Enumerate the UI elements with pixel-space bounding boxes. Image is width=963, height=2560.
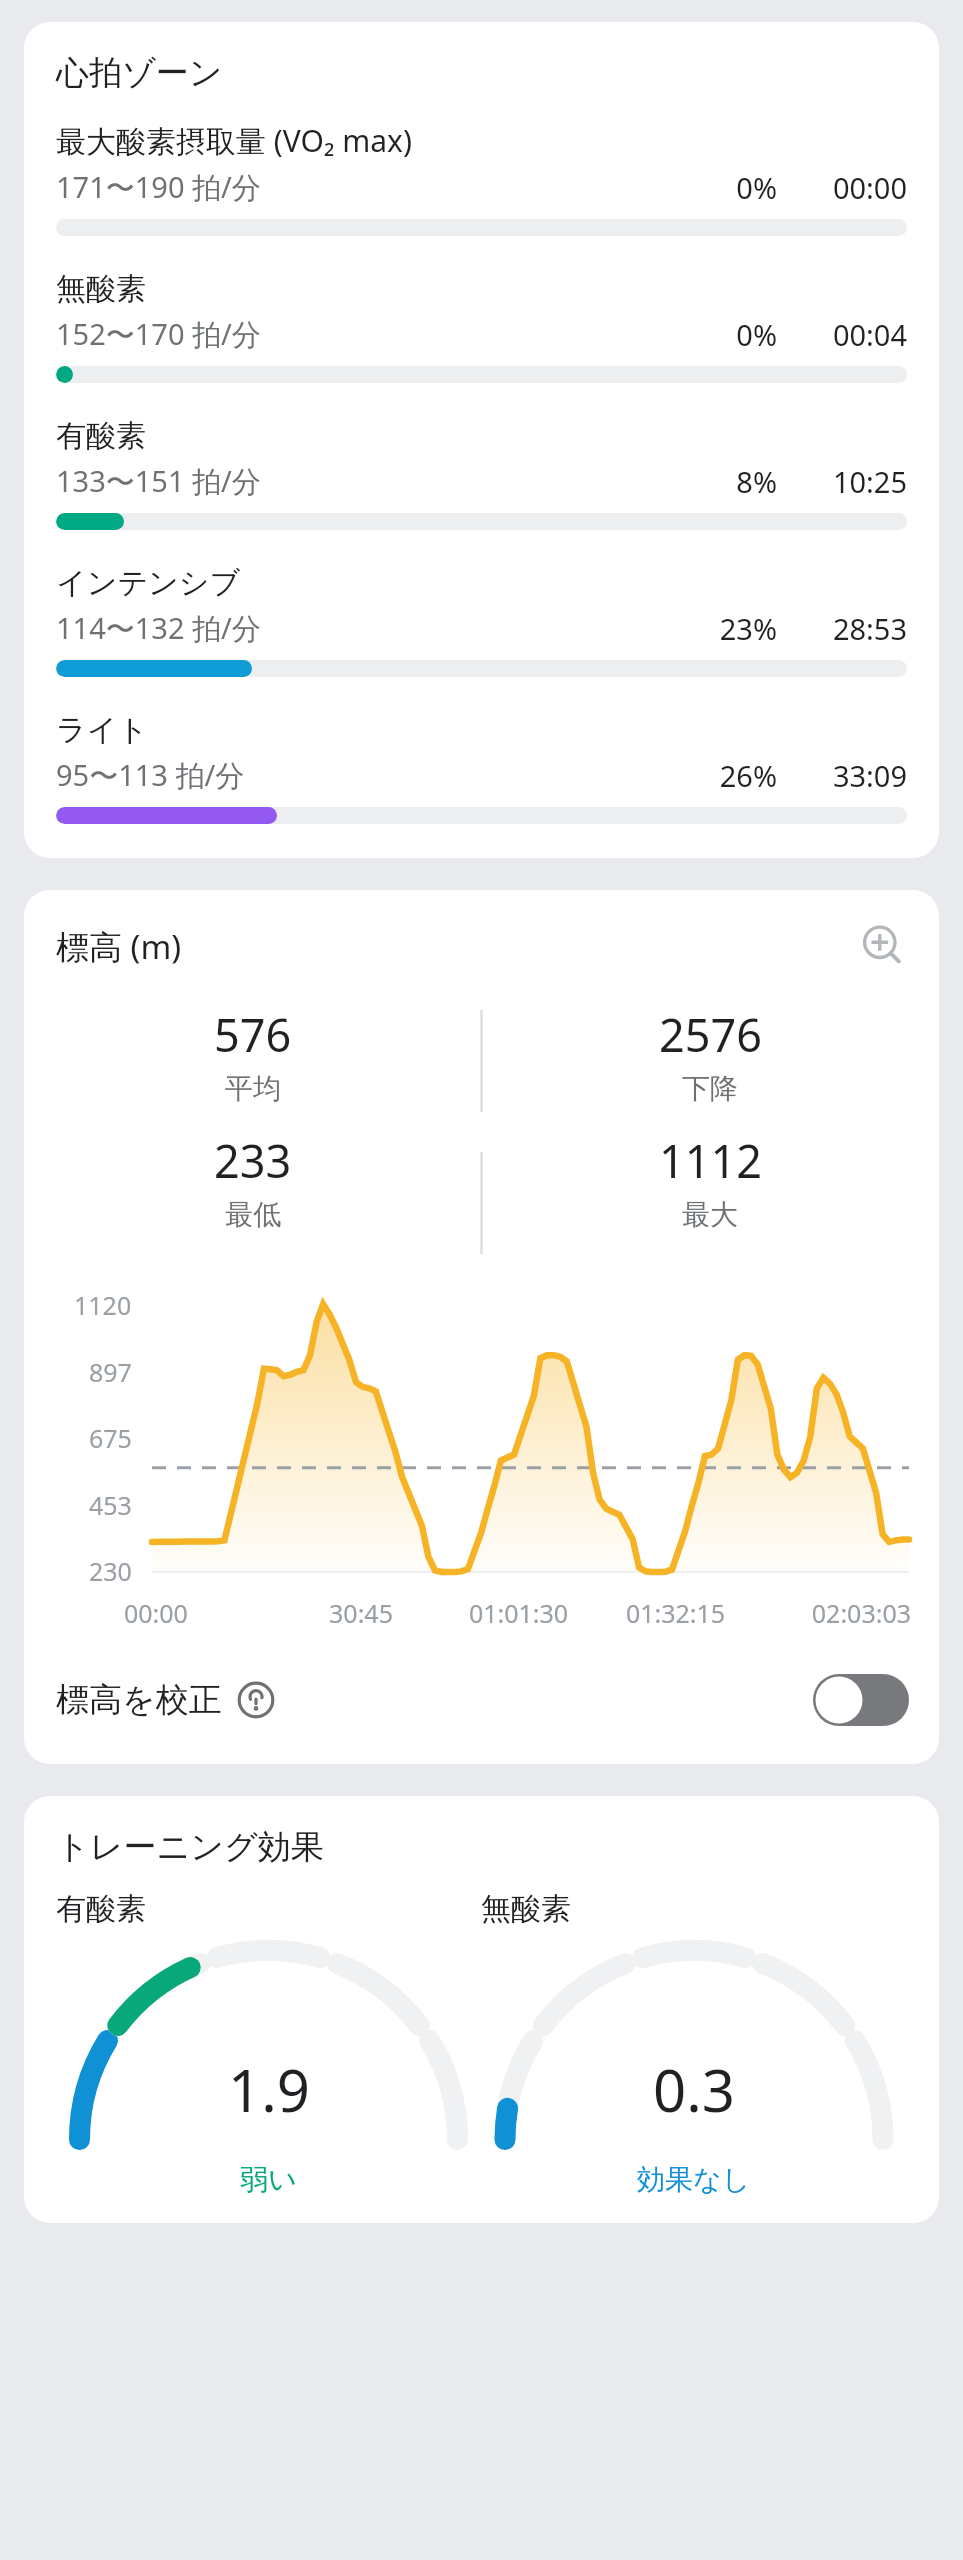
staticText: ライト	[56, 711, 149, 749]
staticText: 1112	[659, 1130, 762, 1191]
staticText: 00:00	[124, 1596, 282, 1630]
staticText: 0%	[687, 168, 777, 207]
staticText: 0%	[687, 315, 777, 354]
staticText: 02:03:03	[754, 1596, 911, 1630]
staticText: 0.3	[653, 2050, 735, 2129]
staticText: 最大	[682, 1197, 738, 1232]
staticText: 00:00	[799, 168, 907, 207]
staticText: 675	[89, 1421, 132, 1455]
staticText: 00:04	[799, 315, 907, 354]
button[interactable]: 拡大	[855, 918, 911, 974]
staticText: 無酸素	[481, 1890, 571, 1928]
button[interactable]: 標高を校正	[56, 1674, 909, 1726]
staticText: 453	[89, 1488, 132, 1522]
staticText: 下降	[682, 1071, 738, 1106]
staticText: 576	[214, 1004, 292, 1065]
staticText: 171〜190 拍/分	[56, 167, 687, 207]
staticText: 152〜170 拍/分	[56, 314, 687, 354]
staticText: 114〜132 拍/分	[56, 608, 687, 648]
staticText: 30:45	[282, 1596, 440, 1630]
staticText: 28:53	[799, 609, 907, 648]
staticText: 26%	[687, 756, 777, 795]
staticText: 有酸素	[56, 417, 146, 455]
staticText: 10:25	[799, 462, 907, 501]
staticText: 01:32:15	[597, 1596, 754, 1630]
staticText: 弱い	[240, 2162, 297, 2197]
staticText: 1120	[74, 1288, 132, 1322]
staticText: 最大酸素摂取量 (VO₂ max)	[56, 120, 412, 161]
staticText: 平均	[225, 1071, 281, 1106]
staticText: 有酸素	[56, 1890, 146, 1928]
staticText: 1.9	[228, 2050, 310, 2129]
staticText: 33:09	[799, 756, 907, 795]
staticText: 897	[89, 1355, 132, 1389]
staticText: 8%	[687, 462, 777, 501]
button[interactable]: トレーニング効果	[24, 1796, 939, 2223]
staticText: 無酸素	[56, 270, 146, 308]
staticText: 心拍ゾーン	[56, 52, 223, 94]
button[interactable]: ヘルプ	[234, 1678, 278, 1722]
staticText: 230	[89, 1554, 132, 1588]
staticText: 効果なし	[637, 2162, 751, 2197]
staticText: 133〜151 拍/分	[56, 461, 687, 501]
staticText: トレーニング効果	[56, 1826, 324, 1868]
button[interactable]: 標高を校正 切り替え	[813, 1674, 909, 1726]
button[interactable]: 心拍ゾーン	[24, 22, 939, 858]
staticText: 01:01:30	[440, 1596, 597, 1630]
staticText: インテンシブ	[56, 564, 241, 602]
staticText: 95〜113 拍/分	[56, 755, 687, 795]
staticText: 標高を校正	[56, 1679, 222, 1721]
staticText: 23%	[687, 609, 777, 648]
staticText: 2576	[659, 1004, 762, 1065]
staticText: 最低	[225, 1197, 281, 1232]
staticText: 233	[214, 1130, 292, 1191]
staticText: 標高 (m)	[56, 924, 855, 969]
